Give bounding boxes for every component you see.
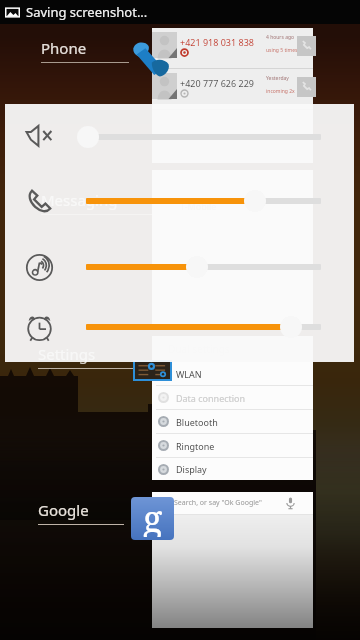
button[interactable] — [5, 307, 354, 347]
staticText: T-Mobile — [180, 200, 217, 212]
button[interactable]: Call — [297, 36, 316, 56]
button[interactable]: WLAN — [158, 362, 313, 385]
button[interactable]: Display — [158, 458, 313, 480]
staticText: WLAN — [176, 368, 202, 380]
staticText: Display — [176, 463, 207, 475]
button[interactable]: Phone — [131, 40, 171, 78]
button[interactable]: Data connection — [158, 386, 313, 409]
staticText: Messaging — [41, 190, 118, 210]
staticText: 4 hours ago — [266, 34, 295, 41]
staticText: Search, or say "Ok Google" — [174, 498, 262, 508]
staticText: Phone — [41, 38, 87, 58]
staticText: Google — [38, 500, 89, 520]
button[interactable]: Ringtone — [158, 434, 313, 457]
staticText: Settings — [38, 344, 96, 364]
button[interactable]: Google — [131, 497, 174, 540]
staticText: +420 777 626 229 — [180, 77, 254, 89]
button[interactable]: +421 918 031 838 — [152, 28, 313, 163]
button[interactable] — [5, 181, 354, 221]
staticText: incoming 2x — [266, 88, 295, 95]
button[interactable]: Search, or say "Ok Google" — [152, 492, 313, 628]
button[interactable]: Call — [297, 77, 316, 97]
staticText: using 5 times — [266, 47, 298, 54]
staticText: Ringtone — [176, 440, 215, 452]
button[interactable] — [5, 117, 354, 157]
staticText: g — [143, 497, 163, 537]
staticText: +421 918 031 838 — [180, 36, 254, 48]
button[interactable] — [5, 247, 354, 287]
staticText: Yesterday — [266, 75, 289, 82]
staticText: Data connection — [176, 392, 246, 404]
staticText: Bluetooth — [176, 416, 218, 428]
button[interactable]: WLAN — [152, 362, 313, 480]
button[interactable]: T-Mobile — [152, 170, 313, 330]
button[interactable]: Bluetooth — [158, 410, 313, 433]
staticText: Saving screenshot... — [26, 3, 148, 21]
button[interactable]: Settings — [133, 360, 172, 381]
